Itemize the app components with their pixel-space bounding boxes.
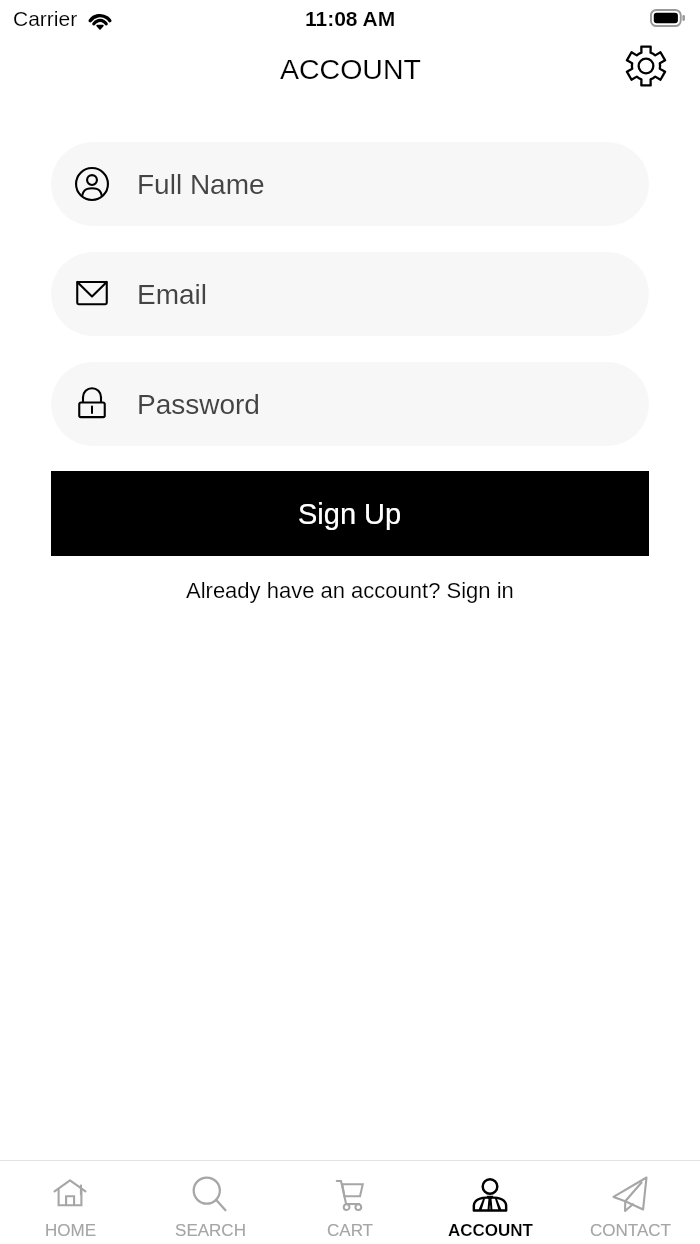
staticText: Full Name — [137, 169, 265, 200]
staticText: Email — [137, 279, 208, 310]
button[interactable]: Sign Up — [51, 471, 649, 556]
staticText: Carrier — [13, 7, 78, 30]
staticText: ACCOUNT — [448, 1221, 533, 1240]
staticText: 11:08 AM — [305, 7, 396, 30]
staticText: Sign Up — [298, 498, 402, 530]
button[interactable]: SEARCH — [140, 1161, 280, 1244]
staticText: SEARCH — [175, 1221, 246, 1240]
button[interactable]: CART — [280, 1161, 420, 1244]
button[interactable]: ACCOUNT — [420, 1161, 560, 1244]
button[interactable]: Password — [51, 362, 649, 446]
staticText: Already have an account? Sign in — [186, 578, 514, 603]
button[interactable]: Full Name — [51, 142, 649, 226]
staticText: ACCOUNT — [280, 53, 421, 85]
staticText: CONTACT — [590, 1221, 671, 1240]
staticText: HOME — [45, 1221, 96, 1240]
staticText: Password — [137, 389, 260, 420]
button[interactable]: Settings — [622, 42, 670, 90]
button[interactable]: Email — [51, 252, 649, 336]
staticText: CART — [327, 1221, 373, 1240]
button[interactable]: CONTACT — [560, 1161, 700, 1244]
button[interactable]: HOME — [0, 1161, 140, 1244]
